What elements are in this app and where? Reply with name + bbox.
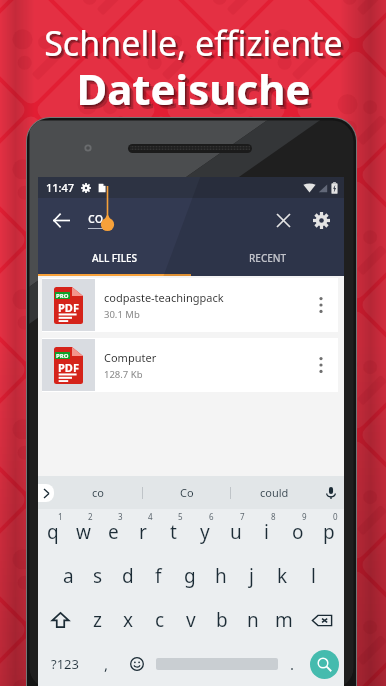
staticText: Dateisuche: [78, 62, 313, 119]
button[interactable]: d: [113, 554, 143, 598]
staticText: w: [76, 519, 91, 545]
staticText: e: [108, 519, 119, 545]
staticText: u: [230, 519, 242, 545]
staticText: Dateisuche: [80, 64, 315, 121]
staticText: b: [216, 607, 228, 633]
button[interactable]: More suggestions: [38, 476, 54, 509]
staticText: Dateisuche: [76, 60, 311, 117]
staticText: PDF: [58, 300, 79, 315]
staticText: co: [92, 485, 104, 500]
button[interactable]: j: [236, 554, 267, 598]
button[interactable]: l: [298, 554, 329, 598]
staticText: Schnelle, effiziente: [46, 22, 345, 68]
button[interactable]: Backspace: [299, 598, 344, 642]
button[interactable]: m: [268, 598, 299, 642]
button[interactable]: Space: [154, 642, 280, 686]
button[interactable]: co: [54, 476, 142, 509]
staticText: d: [122, 563, 134, 589]
button[interactable]: q: [38, 509, 68, 554]
staticText: Co: [180, 485, 194, 500]
button[interactable]: g: [174, 554, 205, 598]
button[interactable]: c: [144, 598, 175, 642]
button[interactable]: y: [189, 509, 220, 554]
button[interactable]: Shift: [38, 598, 82, 642]
button[interactable]: ?123: [38, 642, 92, 686]
staticText: p: [323, 519, 335, 545]
staticText: v: [186, 607, 196, 633]
button[interactable]: e: [98, 509, 128, 554]
button[interactable]: f: [143, 554, 174, 598]
staticText: Schnelle, effiziente: [44, 20, 343, 66]
staticText: 7: [240, 511, 245, 522]
staticText: z: [93, 607, 102, 633]
button[interactable]: Settings: [306, 205, 336, 235]
button[interactable]: More options: [306, 350, 336, 380]
staticText: could: [260, 485, 289, 500]
staticText: 8: [271, 511, 276, 522]
staticText: Schnelle, effiziente: [47, 23, 346, 69]
button[interactable]: s: [83, 554, 113, 598]
staticText: 4: [148, 511, 153, 522]
button[interactable]: p: [313, 509, 344, 554]
staticText: Computer: [104, 350, 157, 365]
button[interactable]: could: [231, 476, 318, 509]
staticText: k: [277, 563, 288, 589]
button[interactable]: n: [237, 598, 268, 642]
button[interactable]: Back: [46, 205, 76, 235]
staticText: i: [264, 519, 269, 545]
staticText: ,: [104, 654, 109, 674]
staticText: Dateisuche: [77, 61, 312, 118]
staticText: s: [93, 563, 103, 589]
staticText: g: [184, 563, 196, 589]
button[interactable]: z: [82, 598, 113, 642]
staticText: r: [139, 519, 147, 545]
button[interactable]: PRO: [42, 338, 338, 392]
button[interactable]: b: [206, 598, 237, 642]
button[interactable]: r: [128, 509, 158, 554]
staticText: ALL FILES: [92, 251, 138, 265]
staticText: co: [88, 208, 104, 227]
button[interactable]: Co: [143, 476, 230, 509]
staticText: m: [275, 607, 293, 633]
staticText: 5: [178, 511, 183, 522]
button[interactable]: u: [220, 509, 251, 554]
button[interactable]: ALL FILES: [38, 242, 191, 274]
button[interactable]: Clear search: [268, 205, 298, 235]
staticText: 30.1 Mb: [104, 308, 140, 321]
staticText: 128.7 Kb: [104, 368, 143, 381]
staticText: codpaste-teachingpack: [104, 290, 224, 305]
button[interactable]: a: [53, 554, 83, 598]
staticText: 0: [333, 511, 338, 522]
button[interactable]: v: [175, 598, 206, 642]
button[interactable]: h: [205, 554, 236, 598]
button[interactable]: ,: [92, 642, 120, 686]
staticText: o: [292, 519, 304, 545]
button[interactable]: Search: [304, 642, 344, 686]
staticText: l: [311, 563, 316, 589]
button[interactable]: Voice input: [318, 476, 344, 509]
button[interactable]: k: [267, 554, 298, 598]
staticText: f: [155, 563, 162, 589]
button[interactable]: i: [251, 509, 282, 554]
staticText: 6: [209, 511, 214, 522]
staticText: 9: [302, 511, 307, 522]
button[interactable]: More options: [306, 290, 336, 320]
staticText: PRO: [56, 292, 69, 299]
staticText: PRO: [56, 352, 69, 359]
staticText: PDF: [58, 360, 79, 375]
button[interactable]: RECENT: [191, 242, 344, 274]
staticText: x: [123, 607, 134, 633]
button[interactable]: .: [280, 642, 304, 686]
button[interactable]: Emoji: [120, 642, 154, 686]
button[interactable]: PRO: [42, 278, 338, 332]
button[interactable]: t: [158, 509, 189, 554]
button[interactable]: o: [282, 509, 313, 554]
staticText: y: [200, 519, 210, 545]
button[interactable]: w: [68, 509, 98, 554]
staticText: c: [155, 607, 165, 633]
staticText: Schnelle, effiziente: [45, 21, 344, 67]
staticText: RECENT: [249, 251, 287, 265]
button[interactable]: x: [113, 598, 144, 642]
staticText: 2: [88, 511, 93, 522]
staticText: n: [247, 607, 259, 633]
